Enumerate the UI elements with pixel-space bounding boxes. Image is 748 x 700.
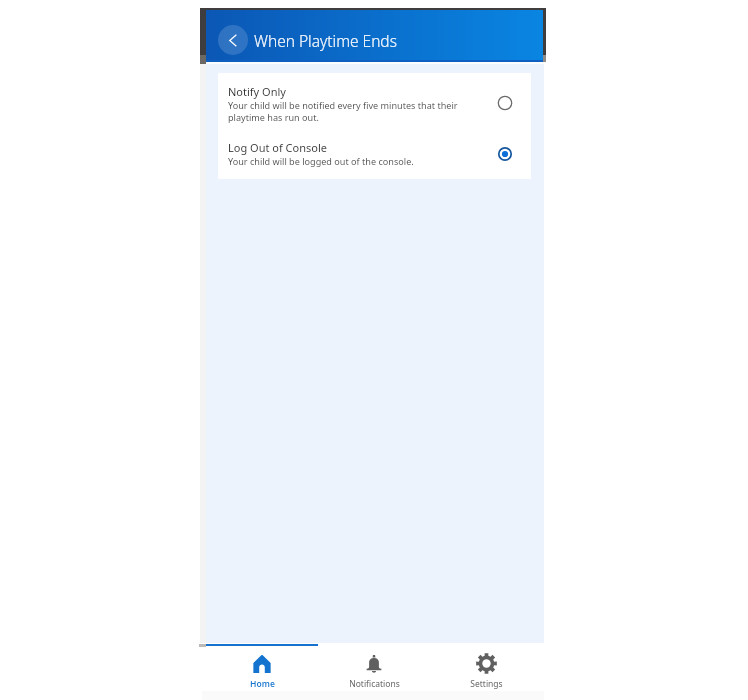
staticText: Notify Only	[228, 84, 286, 99]
staticText: Home	[250, 678, 275, 690]
button[interactable]: Notifications	[324, 651, 424, 693]
button[interactable]: Back	[218, 25, 248, 55]
staticText: Settings	[470, 678, 503, 690]
staticText: Your child will be notified every five m…	[228, 99, 488, 123]
staticText: When Playtime Ends	[254, 30, 397, 51]
button[interactable]: Home	[212, 651, 312, 693]
button[interactable]: Notify Only	[218, 73, 531, 123]
button[interactable]: Settings	[436, 651, 536, 693]
staticText: Notifications	[349, 678, 400, 690]
staticText: Log Out of Console	[228, 140, 327, 155]
button[interactable]: Log Out of Console	[218, 123, 531, 179]
staticText: Your child will be logged out of the con…	[228, 155, 414, 167]
